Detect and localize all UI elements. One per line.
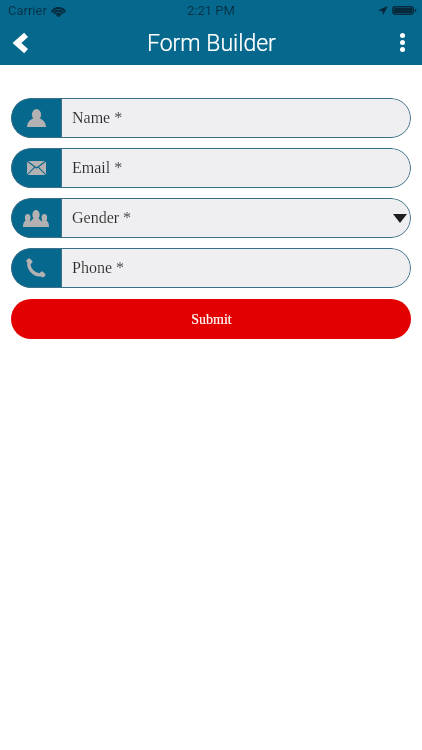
- button[interactable]: More options: [383, 23, 421, 61]
- staticText: Submit: [191, 312, 232, 328]
- button[interactable]: Gender *: [11, 198, 411, 238]
- staticText: Gender *: [72, 209, 132, 227]
- staticText: Form Builder: [147, 30, 276, 57]
- staticText: Phone *: [72, 259, 124, 277]
- staticText: Email *: [72, 159, 123, 177]
- button[interactable]: Name *: [11, 98, 411, 138]
- button[interactable]: Phone *: [11, 248, 411, 288]
- button[interactable]: Submit: [11, 299, 411, 339]
- staticText: 2:21 PM: [187, 3, 235, 18]
- button[interactable]: Back: [2, 24, 40, 62]
- staticText: Name *: [72, 109, 123, 127]
- button[interactable]: Email *: [11, 148, 411, 188]
- staticText: Carrier: [8, 3, 47, 18]
